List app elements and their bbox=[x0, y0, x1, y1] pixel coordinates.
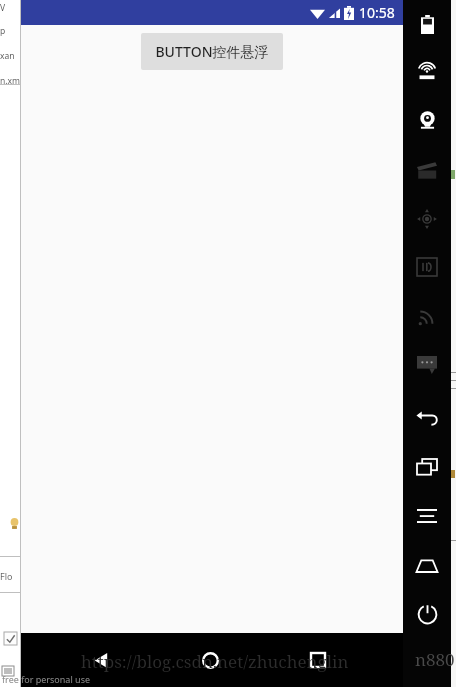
button[interactable]: BUTTON控件悬浮 bbox=[141, 33, 283, 70]
staticText: https://blog.csdn.net/zhuchenglin bbox=[81, 650, 349, 673]
button[interactable]: Home bbox=[196, 646, 224, 674]
staticText: n.xm bbox=[0, 75, 20, 87]
staticText: Flo bbox=[0, 570, 13, 582]
staticText: 10:58 bbox=[359, 3, 395, 22]
button[interactable]: Resize bbox=[413, 502, 441, 530]
button[interactable]: Fold bbox=[413, 551, 441, 579]
staticText: p bbox=[0, 25, 6, 37]
button[interactable]: Directional pad bbox=[413, 205, 441, 233]
button[interactable]: Power bbox=[413, 600, 441, 628]
button[interactable]: Record and playback bbox=[413, 156, 441, 184]
button[interactable]: Camera bbox=[413, 106, 441, 134]
button[interactable]: Rotate bbox=[413, 453, 441, 481]
staticText: n880 bbox=[415, 648, 455, 671]
button[interactable]: Back bbox=[413, 404, 441, 432]
staticText: xan bbox=[0, 50, 15, 62]
button[interactable]: Device identity bbox=[413, 253, 441, 281]
button[interactable]: Phone messages bbox=[413, 351, 441, 379]
button[interactable]: Back bbox=[87, 646, 115, 674]
staticText: V bbox=[0, 2, 6, 14]
staticText: BUTTON控件悬浮 bbox=[155, 42, 269, 61]
button[interactable]: Battery bbox=[413, 10, 441, 38]
button[interactable]: Location GPS bbox=[413, 57, 441, 85]
button[interactable]: Cellular bbox=[413, 302, 441, 330]
button[interactable]: Recent apps bbox=[304, 646, 332, 674]
staticText: free for personal use bbox=[2, 673, 91, 685]
